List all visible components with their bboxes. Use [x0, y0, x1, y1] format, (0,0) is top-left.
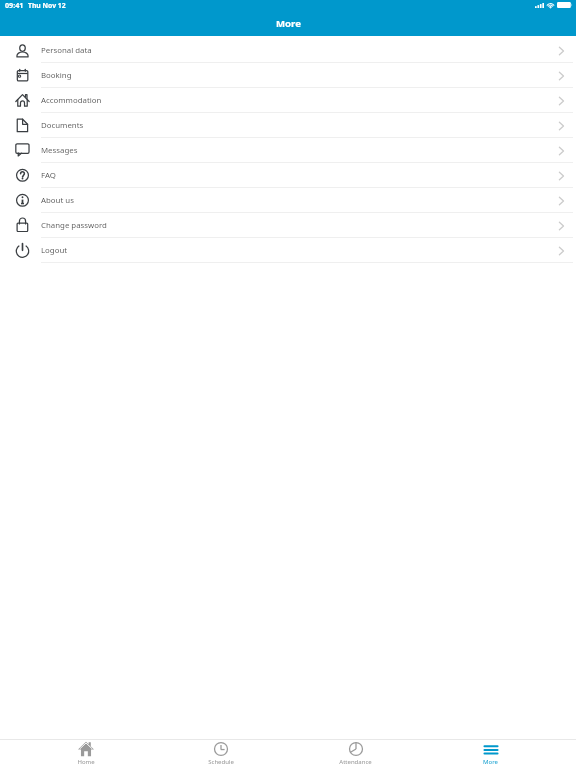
staticText: Booking [41, 70, 72, 81]
button[interactable]: Accommodation [0, 88, 576, 113]
staticText: Home [77, 758, 95, 766]
staticText: Messages [41, 145, 78, 156]
staticText: About us [41, 195, 74, 206]
staticText: FAQ [41, 170, 56, 181]
staticText: More [276, 17, 301, 30]
staticText: Attendance [339, 758, 372, 766]
staticText: Documents [41, 120, 84, 131]
staticText: Schedule [208, 758, 234, 766]
staticText: 09:41 [5, 0, 24, 10]
staticText: Accommodation [41, 95, 102, 106]
button[interactable]: More [423, 742, 558, 767]
button[interactable]: Home [18, 742, 153, 767]
button[interactable]: Booking [0, 63, 576, 88]
button[interactable]: About us [0, 188, 576, 213]
button[interactable]: Schedule [153, 742, 288, 767]
staticText: Change password [41, 220, 107, 231]
button[interactable]: Personal data [0, 38, 576, 63]
button[interactable]: Logout [0, 238, 576, 263]
button[interactable]: Attendance [288, 742, 423, 767]
button[interactable]: Documents [0, 113, 576, 138]
staticText: More [483, 758, 498, 766]
button[interactable]: Messages [0, 138, 576, 163]
button[interactable]: FAQ [0, 163, 576, 188]
staticText: Thu Nov 12 [28, 1, 66, 10]
staticText: Logout [41, 245, 68, 256]
button[interactable]: Change password [0, 213, 576, 238]
staticText: Personal data [41, 45, 92, 56]
